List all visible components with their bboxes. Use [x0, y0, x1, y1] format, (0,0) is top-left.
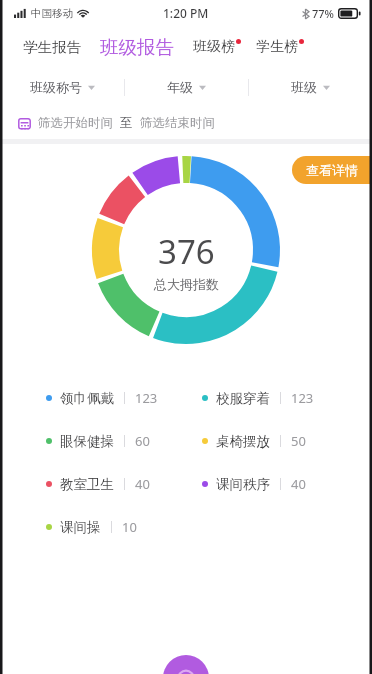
staticText: 77%: [312, 6, 334, 21]
staticText: 中国移动: [31, 7, 73, 20]
staticText: 40: [291, 475, 306, 493]
button[interactable]: 学生报告: [20, 31, 84, 63]
staticText: 至: [120, 115, 133, 131]
staticText: 60: [135, 432, 150, 450]
staticText: 学生榜: [256, 38, 298, 56]
button[interactable]: 查看详情: [292, 156, 372, 184]
staticText: 眼保健操: [60, 433, 114, 450]
staticText: 课间秩序: [216, 476, 270, 493]
button[interactable]: 课间秩序: [202, 473, 306, 495]
staticText: 班级报告: [100, 36, 174, 59]
button[interactable]: 桌椅摆放: [202, 430, 306, 452]
staticText: 123: [291, 389, 314, 407]
staticText: 10: [122, 518, 137, 536]
staticText: 班级: [291, 79, 317, 95]
button[interactable]: 校服穿着: [202, 387, 314, 409]
button[interactable]: 年级: [125, 68, 248, 106]
button[interactable]: 班级称号: [0, 68, 124, 106]
staticText: 40: [135, 475, 150, 493]
staticText: 教室卫生: [60, 476, 114, 493]
button[interactable]: 班级: [249, 68, 372, 106]
staticText: 123: [135, 389, 158, 407]
button[interactable]: 课间操: [46, 516, 137, 538]
staticText: 班级榜: [193, 38, 235, 56]
staticText: 1:20 PM: [163, 5, 209, 21]
button[interactable]: 眼保健操: [46, 430, 150, 452]
button[interactable]: 领巾佩戴: [46, 387, 158, 409]
staticText: 50: [291, 432, 306, 450]
button[interactable]: 学生榜: [253, 31, 307, 63]
staticText: 学生报告: [23, 38, 81, 56]
staticText: 领巾佩戴: [60, 390, 114, 407]
button[interactable]: Camera: [163, 655, 209, 674]
staticText: 筛选开始时间: [38, 115, 113, 131]
staticText: 筛选结束时间: [140, 115, 215, 131]
staticText: 课间操: [60, 519, 101, 536]
staticText: 桌椅摆放: [216, 433, 270, 450]
button[interactable]: 教室卫生: [46, 473, 150, 495]
button[interactable]: 班级榜: [190, 31, 244, 63]
staticText: 总大拇指数: [154, 276, 219, 292]
staticText: 年级: [167, 79, 193, 95]
staticText: 校服穿着: [216, 390, 270, 407]
staticText: 班级称号: [30, 79, 82, 95]
button[interactable]: 班级报告: [97, 32, 177, 63]
staticText: 查看详情: [306, 162, 358, 178]
staticText: 376: [158, 229, 215, 274]
button[interactable]: 筛选开始时间: [16, 111, 217, 135]
